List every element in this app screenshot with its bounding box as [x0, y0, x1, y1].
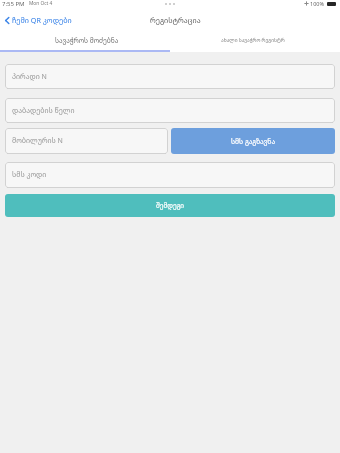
staticText: სმს გაგზავნა: [231, 137, 276, 146]
button[interactable]: ახალი სავაჭრო რეგისტრ: [170, 30, 340, 50]
staticText: სმს კოდი: [12, 170, 47, 180]
staticText: ახალი სავაჭრო რეგისტრ: [221, 37, 285, 44]
staticText: სავაჭროს მოძებნა: [55, 36, 119, 45]
button[interactable]: სავაჭროს მოძებნა: [0, 30, 170, 50]
staticText: პირადი N: [12, 72, 47, 82]
button[interactable]: დაბადების წელი: [5, 98, 335, 123]
button[interactable]: შემდეგი: [5, 194, 335, 217]
button[interactable]: სმს კოდი: [5, 162, 335, 188]
staticText: რეგისტრაცია: [150, 15, 201, 25]
button[interactable]: პირადი N: [5, 64, 335, 89]
staticText: 100%: [310, 0, 325, 7]
button[interactable]: სმს გაგზავნა: [171, 128, 335, 154]
staticText: მობილურის N: [12, 136, 63, 146]
staticText: შემდეგი: [156, 201, 185, 210]
staticText: 7:55 PM: [2, 0, 25, 7]
other: Back: [4, 16, 10, 25]
button[interactable]: Back: [4, 15, 72, 25]
button[interactable]: მობილურის N: [5, 128, 168, 154]
staticText: ჩემი QR კოდები: [12, 15, 72, 25]
staticText: დაბადების წელი: [12, 106, 75, 116]
staticText: Mon Oct 4: [29, 0, 53, 7]
